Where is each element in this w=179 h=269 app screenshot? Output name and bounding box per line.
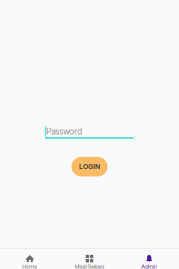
staticText: Admin bbox=[141, 263, 157, 269]
button[interactable]: Admin bbox=[119, 249, 179, 269]
button[interactable]: LOGIN bbox=[71, 157, 107, 176]
button[interactable]: Home bbox=[0, 249, 60, 269]
button[interactable]: Meal Swipes bbox=[60, 249, 119, 269]
staticText: LOGIN bbox=[79, 163, 100, 171]
staticText: Password bbox=[46, 126, 82, 137]
staticText: Home bbox=[22, 263, 37, 269]
staticText: Meal Swipes bbox=[74, 263, 104, 269]
